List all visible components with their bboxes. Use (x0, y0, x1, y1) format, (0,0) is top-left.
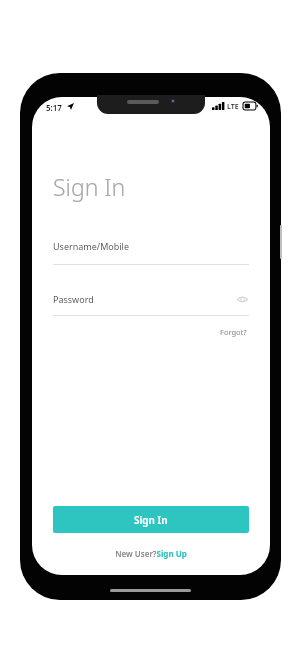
staticText: Password (53, 293, 94, 305)
button[interactable]: Password (53, 292, 249, 316)
staticText: Sign In (134, 513, 168, 527)
button[interactable]: Show password (235, 292, 249, 306)
button[interactable]: Sign In (53, 506, 249, 533)
button[interactable]: Username/Mobile (53, 240, 249, 265)
staticText: Forgot? (220, 327, 247, 337)
staticText: New User?Sign Up (115, 548, 187, 559)
staticText: 5:17 (46, 102, 62, 113)
button[interactable]: Forgot? (218, 325, 249, 339)
staticText: Username/Mobile (53, 240, 129, 252)
button[interactable]: New User?Sign Up (111, 546, 191, 561)
staticText: Sign In (53, 171, 126, 202)
staticText: LTE (227, 102, 239, 112)
